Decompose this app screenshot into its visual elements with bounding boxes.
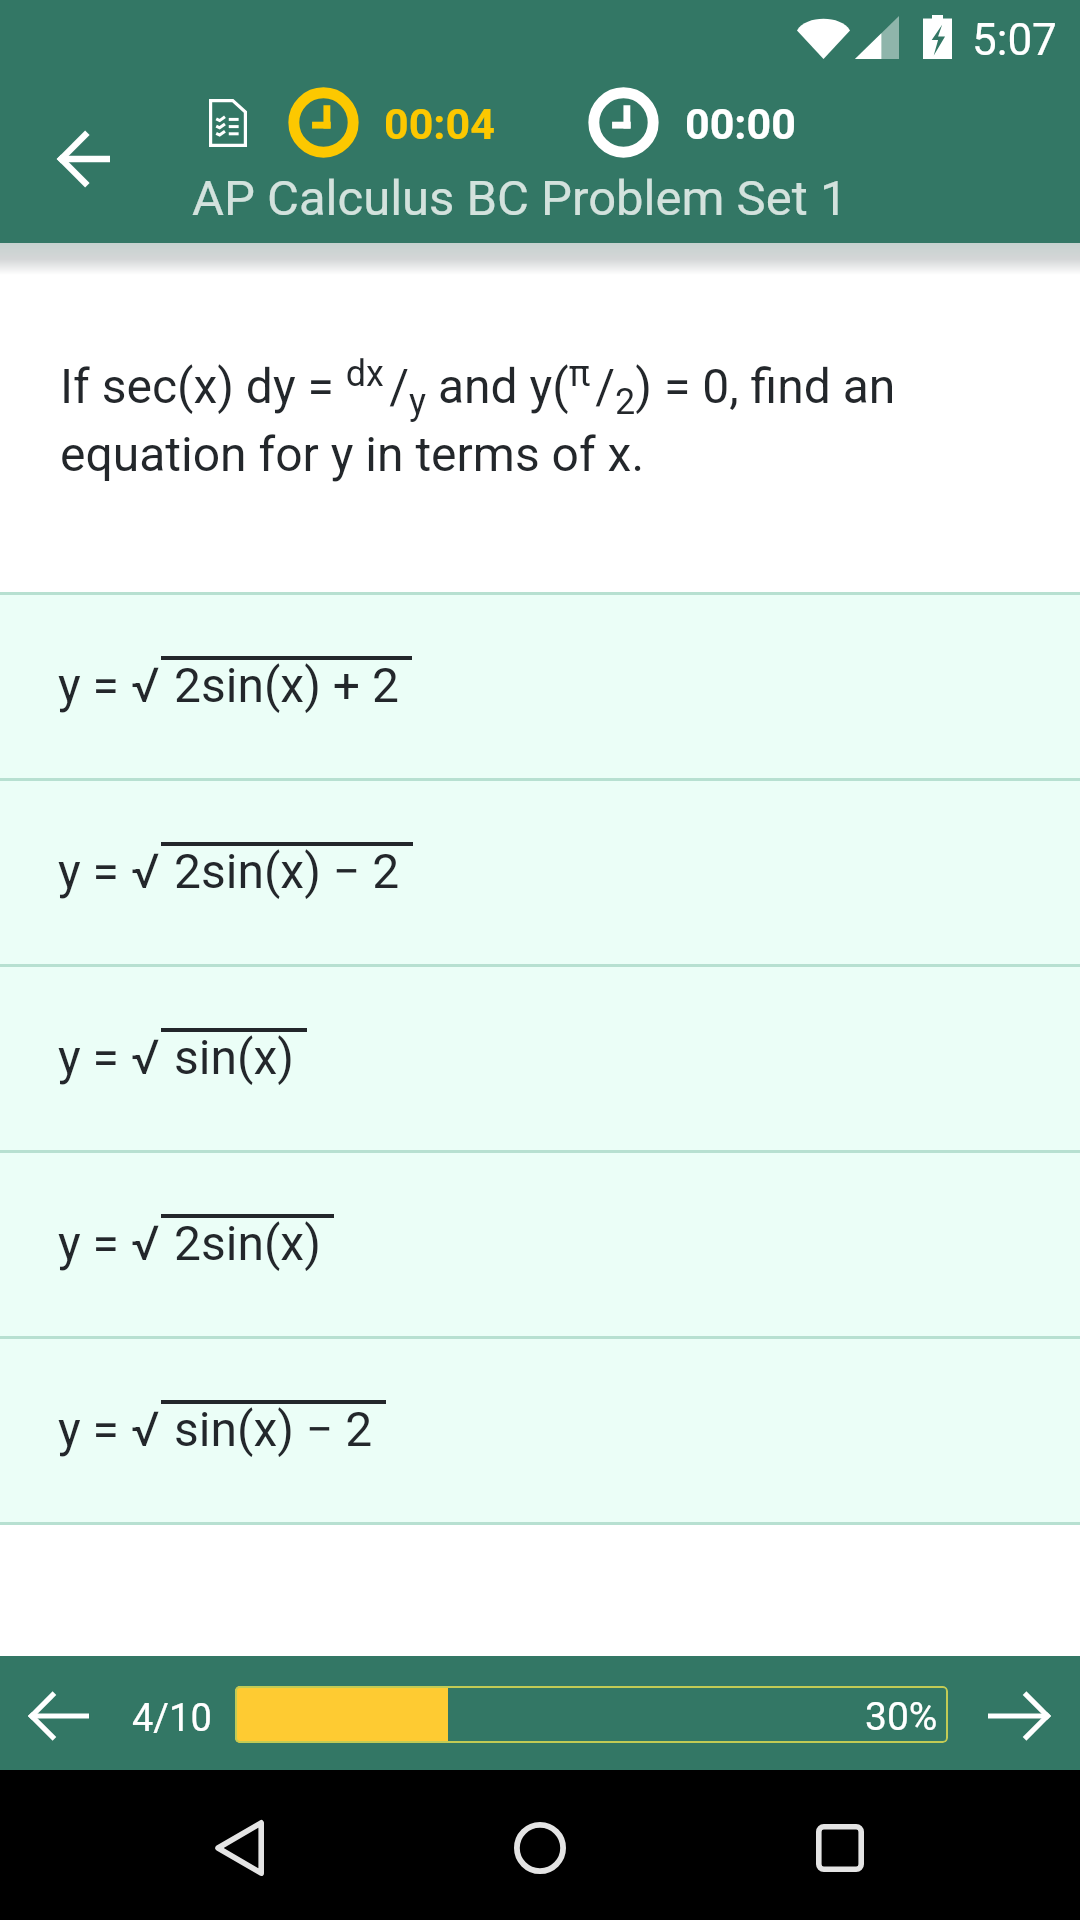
button[interactable]: Back: [10, 111, 106, 207]
staticText: y = √: [58, 843, 160, 899]
staticText: 30%: [865, 1694, 938, 1740]
staticText: equation for y in terms of x.: [60, 426, 645, 482]
button[interactable]: y = √: [0, 967, 1080, 1150]
staticText: y = √: [58, 1215, 160, 1271]
staticText: sin(x) − 2: [174, 1401, 373, 1457]
staticText: y = √: [58, 1401, 160, 1457]
staticText: y = √: [58, 657, 160, 713]
staticText: 2sin(x) − 2: [174, 843, 400, 899]
staticText: sin(x): [174, 1029, 294, 1085]
staticText: 2sin(x): [174, 1215, 321, 1271]
button[interactable]: y = √: [0, 781, 1080, 964]
button[interactable]: Home: [465, 1770, 615, 1920]
staticText: AP Calculus BC Problem Set 1: [192, 170, 848, 227]
staticText: 2sin(x) + 2: [174, 657, 399, 713]
button[interactable]: y = √: [0, 1153, 1080, 1336]
staticText: 5:07: [972, 14, 1057, 66]
button[interactable]: Progress 30 percent: [235, 1686, 948, 1743]
button[interactable]: Back: [165, 1770, 315, 1920]
button[interactable]: Next question: [960, 1656, 1080, 1770]
staticText: y = √: [58, 1029, 160, 1085]
button[interactable]: y = √: [0, 595, 1080, 778]
staticText: 4/10: [132, 1696, 212, 1741]
button[interactable]: Recents: [765, 1770, 915, 1920]
button[interactable]: Previous question: [0, 1656, 140, 1770]
staticText: 00:04: [384, 99, 495, 149]
staticText: 00:00: [685, 99, 796, 149]
staticText: If sec(x) dy = dx /y and y(π /2) = 0, fi…: [60, 353, 896, 423]
button[interactable]: y = √: [0, 1339, 1080, 1522]
